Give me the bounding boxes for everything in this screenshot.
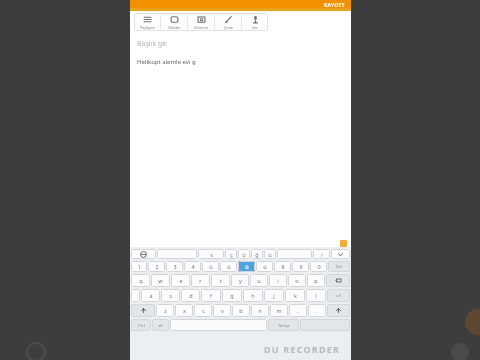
button[interactable]: f [201,289,221,302]
button[interactable]: 4 [184,261,201,272]
button[interactable]: Key [131,289,140,302]
staticText: oll [336,293,341,298]
button[interactable]: m [270,304,288,317]
staticText: q [139,277,143,284]
staticText: ü [263,263,267,270]
button[interactable]: ü [238,249,250,259]
button[interactable]: e [171,274,190,287]
staticText: a [149,292,153,299]
button[interactable]: v [213,304,231,317]
staticText: v [221,307,224,314]
staticText: ü [245,263,249,270]
button[interactable]: alt [152,319,169,331]
button[interactable]: Key [157,249,197,259]
button[interactable]: a [141,289,160,302]
button[interactable]: Key [331,249,350,259]
button[interactable]: . [308,304,326,317]
staticText: Del [336,264,342,269]
staticText: DU RECORDER [264,343,341,355]
button[interactable]: Helikopt alemle evi g [137,58,196,66]
button[interactable]: Del [328,261,350,272]
button[interactable]: h [243,289,263,302]
staticText: c [202,307,205,314]
button[interactable]: Key [327,304,350,317]
button[interactable]: i [269,274,287,287]
staticText: y [239,277,242,284]
button[interactable]: w [151,274,170,287]
button[interactable]: ü [256,261,273,272]
button[interactable]: ç [225,249,237,259]
staticText: 9 [299,263,303,270]
staticText: b [239,307,243,314]
button[interactable]: b [232,304,250,317]
button[interactable]: s [198,249,224,259]
button[interactable]: n [251,304,269,317]
staticText: f [210,292,212,299]
staticText: h [251,292,255,299]
button[interactable]: r [191,274,210,287]
button[interactable]: j [264,289,284,302]
staticText: 0 [317,263,321,270]
staticText: n [258,307,262,314]
staticText: ğ [255,251,259,258]
button[interactable]: ü [238,261,255,272]
button[interactable]: Key [131,249,156,259]
button[interactable]: , [289,304,307,317]
button[interactable]: y [231,274,249,287]
button[interactable]: Çizim [215,13,241,31]
button[interactable]: Key [170,319,267,331]
staticText: j [273,292,275,299]
staticText: l [315,292,317,299]
button[interactable]: 8 [274,261,291,272]
button[interactable]: Key [277,249,312,259]
button[interactable]: 1 [131,261,147,272]
button[interactable]: z [156,304,174,317]
button[interactable]: Görüntü [188,13,214,31]
button[interactable]: Paylaşım [134,13,160,31]
staticText: g [230,292,234,299]
button[interactable]: c [194,304,212,317]
staticText: ü [209,263,213,270]
button[interactable]: Gönder [161,13,187,31]
button[interactable]: oll [327,289,350,302]
button[interactable]: Başlık gir [137,39,168,49]
staticText: 1 [137,263,141,270]
staticText: ü [227,263,231,270]
staticText: w [158,277,163,284]
button[interactable]: i [313,249,330,259]
button[interactable]: q [131,274,150,287]
staticText: m [276,307,282,314]
button[interactable]: 2 [148,261,165,272]
button[interactable]: o [288,274,306,287]
button[interactable]: ü [202,261,219,272]
button[interactable]: 0 [310,261,327,272]
button[interactable]: t [211,274,230,287]
button[interactable]: Key [300,319,350,331]
staticText: 8 [281,263,285,270]
staticText: t [220,277,222,284]
button[interactable]: s [161,289,180,302]
button[interactable]: l [306,289,326,302]
button[interactable]: Türkçe [268,319,299,331]
staticText: x [183,307,186,314]
staticText: 3 [173,263,177,270]
button[interactable]: Key [131,304,155,317]
button[interactable]: 3 [166,261,183,272]
button[interactable]: u [250,274,268,287]
button[interactable]: g [222,289,242,302]
button[interactable]: ü [264,249,276,259]
button[interactable]: 9 [292,261,309,272]
button[interactable]: k [285,289,305,302]
button[interactable]: ü [220,261,237,272]
button[interactable]: Ses [242,13,268,31]
button[interactable]: ğ [251,249,263,259]
button[interactable]: d [181,289,200,302]
button[interactable]: x [175,304,193,317]
button[interactable]: p [307,274,325,287]
button[interactable]: Key [326,274,350,287]
staticText: Görüntü [194,25,208,30]
button[interactable]: Ctrl [131,319,151,331]
staticText: Çizim [224,25,233,30]
staticText: alt [158,323,163,328]
staticText: Türkçe [278,323,290,328]
